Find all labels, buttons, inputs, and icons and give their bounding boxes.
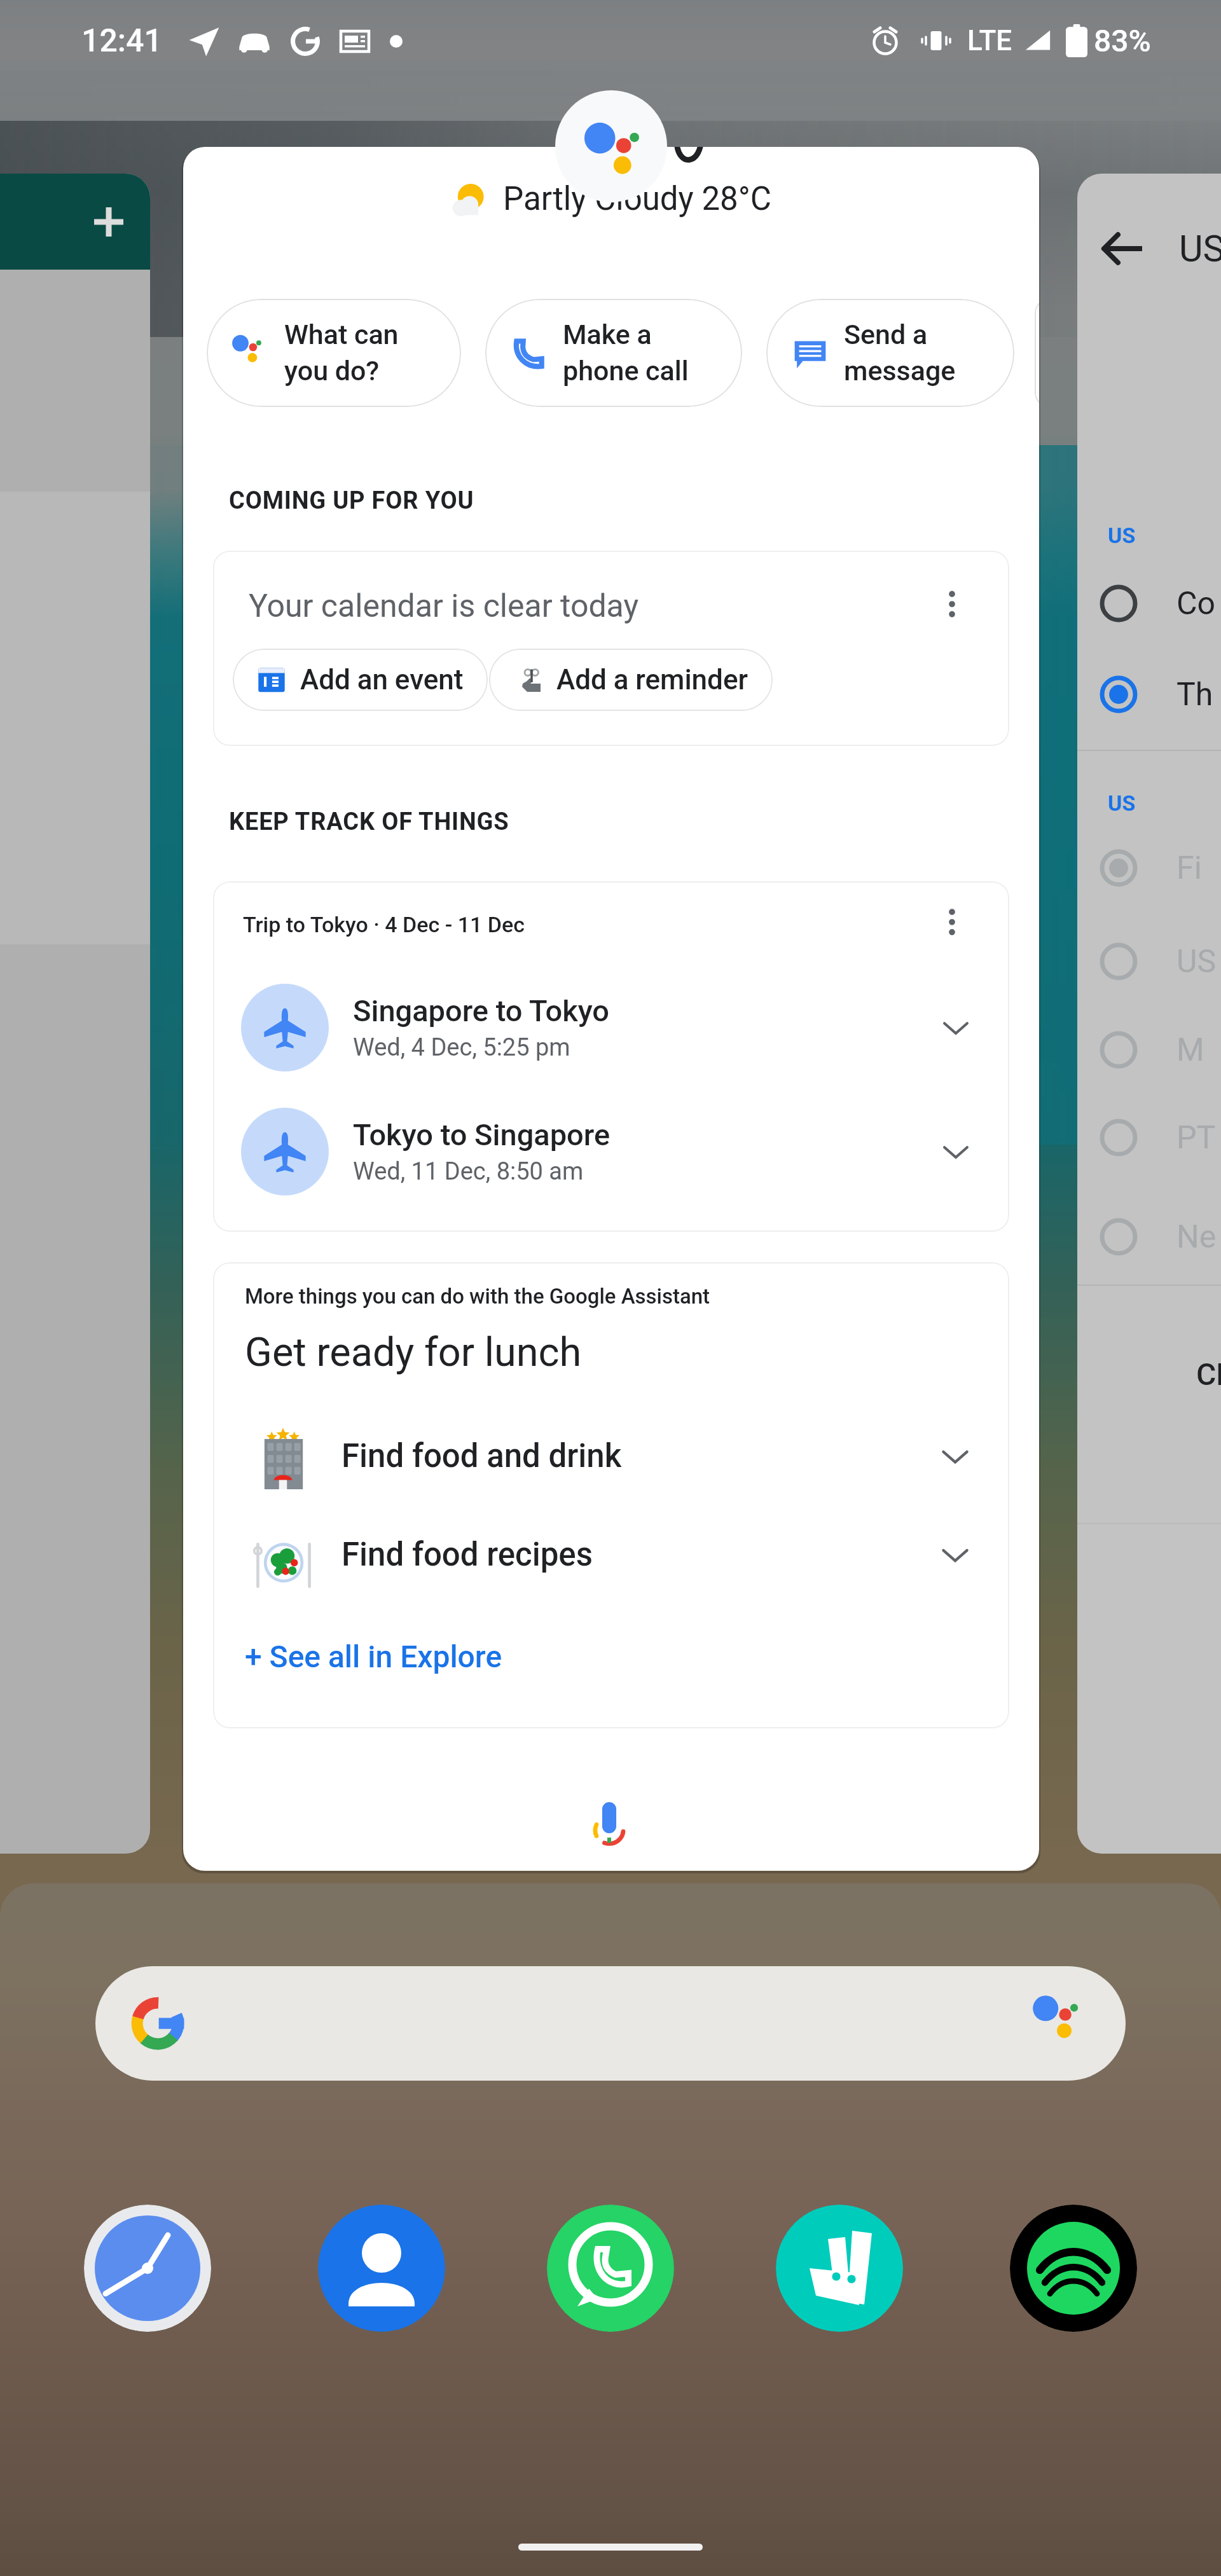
button[interactable]: Google Assistant bbox=[555, 90, 667, 202]
other: Expand bbox=[937, 1536, 974, 1573]
button[interactable]: Contacts bbox=[318, 2205, 445, 2332]
staticText: 83% bbox=[1094, 23, 1151, 59]
staticText: Find food and drink bbox=[341, 1437, 622, 1475]
staticText: Find food recipes bbox=[341, 1536, 593, 1574]
staticText: Add an event bbox=[300, 663, 464, 696]
button[interactable]: Find food and drink bbox=[213, 1409, 1009, 1504]
staticText: Your calendar is clear today bbox=[249, 588, 639, 625]
button[interactable]: M bbox=[1077, 1019, 1221, 1080]
button[interactable]: US bbox=[1077, 931, 1221, 992]
button[interactable]: Make a phone call bbox=[485, 299, 742, 407]
staticText: US bbox=[1108, 790, 1136, 816]
staticText: M bbox=[1176, 1031, 1204, 1069]
other: More options bbox=[938, 590, 966, 618]
staticText: 12:41 bbox=[81, 22, 162, 60]
staticText: KEEP TRACK OF THINGS bbox=[229, 808, 509, 836]
button[interactable]: Spotify bbox=[1010, 2205, 1137, 2332]
staticText: CL bbox=[1196, 1356, 1221, 1392]
staticText: Co bbox=[1176, 585, 1216, 623]
staticText: Singapore to Tokyo bbox=[353, 993, 610, 1028]
other: Google Assistant bbox=[1033, 1995, 1090, 2052]
button[interactable]: Send a message bbox=[766, 299, 1014, 407]
button[interactable]: Add an event bbox=[233, 649, 488, 711]
staticText: Make a phone call bbox=[563, 319, 689, 387]
staticText: US bbox=[1176, 943, 1217, 981]
button[interactable]: Deliveroo bbox=[776, 2205, 903, 2332]
other: Expand bbox=[937, 1438, 974, 1475]
other: Add bbox=[92, 205, 125, 238]
staticText: LTE bbox=[967, 24, 1012, 57]
staticText: What can you do? bbox=[284, 319, 399, 387]
button[interactable]: Your calendar is clear today bbox=[213, 551, 1009, 746]
staticText: Trip to Tokyo · 4 Dec - 11 Dec bbox=[243, 912, 525, 937]
other: Expand bbox=[938, 1010, 974, 1045]
other: Google Search bbox=[131, 1997, 184, 2050]
staticText: US bbox=[1179, 227, 1221, 270]
staticText: Get ready for lunch bbox=[245, 1329, 582, 1376]
staticText: + See all in Explore bbox=[245, 1639, 502, 1674]
staticText: COMING UP FOR YOU bbox=[229, 486, 474, 515]
staticText: Th bbox=[1176, 676, 1213, 713]
staticText: Add a reminder bbox=[556, 663, 748, 696]
other: Voice input bbox=[595, 1800, 624, 1843]
staticText: Ne bbox=[1176, 1218, 1217, 1256]
button[interactable] bbox=[1035, 299, 1039, 407]
staticText: More things you can do with the Google A… bbox=[245, 1284, 710, 1309]
staticText: Partly Cloudy 28°C bbox=[503, 180, 771, 218]
button[interactable]: Tokyo to Singapore bbox=[213, 1094, 1009, 1209]
button[interactable]: Ne bbox=[1077, 1206, 1221, 1267]
button[interactable]: Clock bbox=[84, 2205, 211, 2332]
staticText: Wed, 4 Dec, 5:25 pm bbox=[353, 1033, 570, 1062]
button[interactable]: Singapore to Tokyo bbox=[213, 970, 1009, 1085]
button[interactable]: Find food recipes bbox=[213, 1507, 1009, 1602]
other: Expand bbox=[938, 1134, 974, 1169]
staticText: Tokyo to Singapore bbox=[353, 1117, 610, 1152]
button[interactable]: Fi bbox=[1077, 837, 1221, 899]
staticText: Fi bbox=[1176, 850, 1202, 887]
button[interactable]: Th bbox=[1077, 664, 1221, 725]
button[interactable]: PT bbox=[1077, 1107, 1221, 1168]
button[interactable]: Co bbox=[1077, 573, 1221, 634]
button[interactable]: What can you do? bbox=[207, 299, 461, 407]
staticText: PT bbox=[1176, 1119, 1216, 1157]
button[interactable]: WhatsApp bbox=[547, 2205, 674, 2332]
other: More options bbox=[938, 908, 966, 936]
staticText: Send a message bbox=[844, 319, 956, 387]
button[interactable]: Add a reminder bbox=[489, 649, 773, 711]
button[interactable]: Trip to Tokyo · 4 Dec - 11 Dec bbox=[213, 881, 1009, 1232]
staticText: US bbox=[1108, 523, 1136, 548]
button[interactable]: Google Search bbox=[95, 1966, 1126, 2081]
button[interactable]: + See all in Explore bbox=[242, 1636, 505, 1677]
button[interactable]: More things you can do with the Google A… bbox=[213, 1262, 1009, 1728]
staticText: Wed, 11 Dec, 8:50 am bbox=[353, 1157, 584, 1186]
